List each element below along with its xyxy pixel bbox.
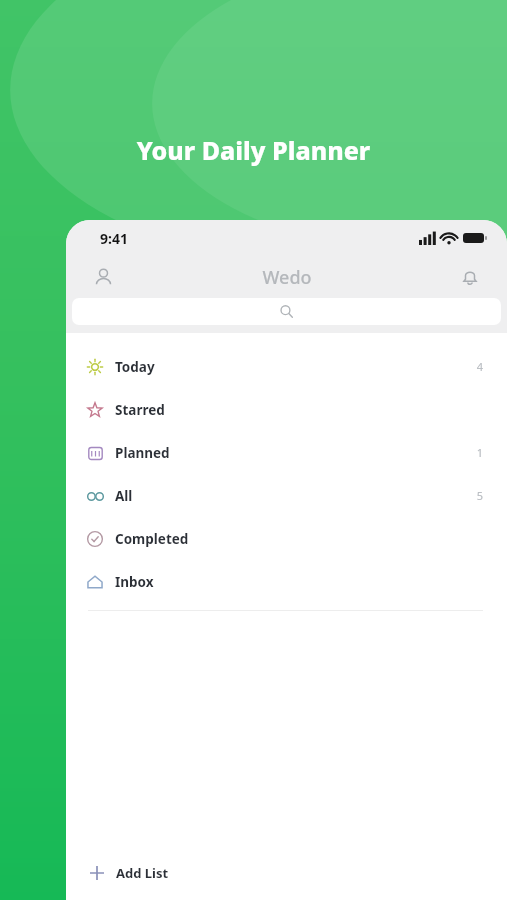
staticText: Completed bbox=[115, 530, 483, 548]
button[interactable] bbox=[72, 298, 501, 325]
staticText: All bbox=[115, 487, 476, 505]
staticText: Wedo bbox=[262, 265, 312, 290]
button[interactable]: Completed bbox=[66, 517, 507, 560]
staticText: Inbox bbox=[115, 573, 483, 591]
staticText: Planned bbox=[115, 444, 476, 462]
staticText: 5 bbox=[476, 488, 483, 503]
staticText: Starred bbox=[115, 401, 483, 419]
staticText: 9:41 bbox=[100, 229, 128, 248]
button[interactable]: Planned bbox=[66, 431, 507, 474]
staticText: 4 bbox=[476, 359, 483, 374]
staticText: Your Daily Planner bbox=[0, 133, 507, 167]
button[interactable]: Add List bbox=[66, 846, 507, 900]
staticText: Today bbox=[115, 358, 476, 376]
button[interactable]: Notifications bbox=[449, 256, 491, 298]
staticText: Add List bbox=[116, 864, 169, 882]
button[interactable]: Profile bbox=[82, 256, 124, 298]
button[interactable]: Inbox bbox=[66, 560, 507, 603]
staticText: 1 bbox=[476, 445, 483, 460]
button[interactable]: Today bbox=[66, 345, 507, 388]
button[interactable]: All bbox=[66, 474, 507, 517]
button[interactable]: Starred bbox=[66, 388, 507, 431]
